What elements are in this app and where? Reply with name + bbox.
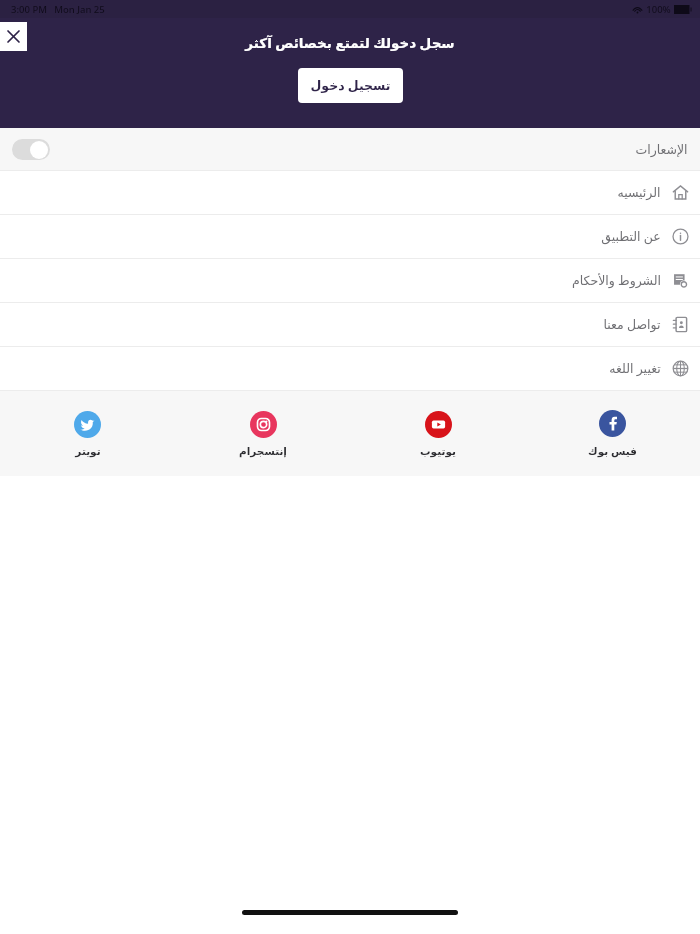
staticText: Mon Jan 25 [54, 3, 105, 16]
staticText: الرئيسيه [617, 185, 661, 200]
staticText: سجل دخولك لتمتع بخصائص آكثر [245, 34, 455, 52]
button[interactable]: تواصل معنا [0, 303, 700, 346]
staticText: الإشعارات [635, 142, 688, 157]
button[interactable]: الرئيسيه [0, 171, 700, 214]
staticText: إنتسجرام [239, 445, 287, 457]
button[interactable]: تسجيل دخول [298, 68, 403, 103]
button[interactable]: إنتسجرام [233, 409, 293, 459]
button[interactable]: Notifications toggle [12, 139, 50, 160]
button[interactable]: عن التطبيق [0, 215, 700, 258]
button[interactable]: الشروط والأحكام [0, 259, 700, 302]
staticText: 100% [646, 3, 671, 16]
button[interactable]: تغيير اللغه [0, 347, 700, 390]
staticText: تويتر [75, 445, 101, 457]
staticText: تغيير اللغه [609, 360, 661, 377]
staticText: الشروط والأحكام [572, 272, 661, 289]
button[interactable]: فيس بوك [582, 408, 643, 460]
staticText: 3:00 PM [11, 3, 47, 16]
staticText: عن التطبيق [601, 228, 661, 245]
button[interactable]: Close [0, 22, 27, 51]
staticText: يوتيوب [420, 445, 456, 457]
staticText: تواصل معنا [603, 316, 661, 333]
button[interactable]: يوتيوب [414, 409, 462, 459]
staticText: فيس بوك [588, 444, 637, 458]
staticText: تسجيل دخول [310, 77, 391, 94]
button[interactable]: الإشعارات [0, 128, 700, 170]
button[interactable]: تويتر [68, 409, 107, 459]
